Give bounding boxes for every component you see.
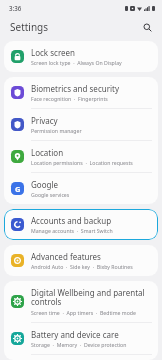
button[interactable]: Accounts and backup (4, 209, 158, 240)
staticText: Manage accounts · Smart Switch (31, 227, 113, 234)
staticText: Location (31, 147, 64, 158)
button[interactable]: Advanced features (4, 245, 158, 276)
staticText: Permission manager (31, 127, 82, 134)
staticText: Screen lock type · Always On Display (31, 59, 122, 66)
staticText: Advanced features (31, 251, 101, 262)
staticText: Accounts and backup (31, 215, 112, 226)
button[interactable]: Privacy (4, 109, 158, 140)
staticText: Google (31, 179, 58, 190)
staticText: Battery and device care (31, 329, 119, 340)
staticText: Google services (31, 191, 70, 198)
staticText: Digital Wellbeing and parental controls (31, 287, 150, 308)
staticText: Location permissions · Location requests (31, 159, 133, 166)
button[interactable]: Search (139, 19, 155, 35)
staticText: Screen time · App timers · Bedtime mode (31, 309, 136, 316)
staticText: G (15, 184, 21, 194)
staticText: Face recognition · Fingerprints (31, 95, 108, 102)
staticText: Biometrics and security (31, 83, 119, 94)
staticText: 3:36 (9, 4, 22, 12)
button[interactable]: G (4, 173, 158, 204)
button[interactable]: Lock screen (4, 41, 158, 72)
button[interactable]: Location (4, 141, 158, 172)
staticText: Lock screen (31, 47, 76, 58)
staticText: Settings (10, 20, 49, 34)
staticText: Android Auto · Side key · Bixby Routines (31, 263, 133, 270)
staticText: Storage · Memory · Device protection (31, 341, 127, 348)
button[interactable]: Biometrics and security (4, 77, 158, 108)
button[interactable]: Battery and device care (4, 323, 158, 354)
button[interactable]: Digital Wellbeing and parental controls (4, 281, 158, 322)
staticText: Privacy (31, 115, 58, 126)
